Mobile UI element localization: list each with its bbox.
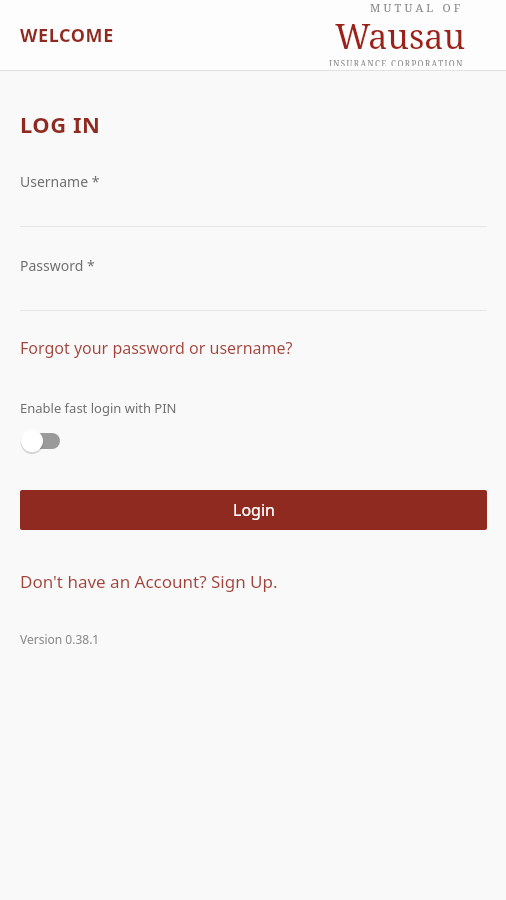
button[interactable]: Login <box>20 490 487 530</box>
staticText: WELCOME <box>20 23 114 48</box>
staticText: Login <box>233 499 275 521</box>
staticText: Username * <box>20 172 100 191</box>
staticText: MUTUAL OF <box>370 0 464 15</box>
button[interactable]: Forgot your password or username? <box>20 335 293 361</box>
button[interactable]: Enable fast login with PIN <box>20 428 64 454</box>
staticText: Version 0.38.1 <box>20 631 100 647</box>
button[interactable]: Don't have an Account? Sign Up. <box>20 568 278 595</box>
button[interactable]: Username * <box>20 172 487 227</box>
staticText: INSURANCE CORPORATION <box>329 58 464 66</box>
staticText: Password * <box>20 256 95 275</box>
button[interactable]: Password * <box>20 256 487 311</box>
staticText: Enable fast login with PIN <box>20 399 177 417</box>
staticText: Wausau <box>335 13 466 59</box>
staticText: Forgot your password or username? <box>20 337 293 359</box>
staticText: LOG IN <box>20 109 101 139</box>
staticText: Don't have an Account? Sign Up. <box>20 570 278 593</box>
